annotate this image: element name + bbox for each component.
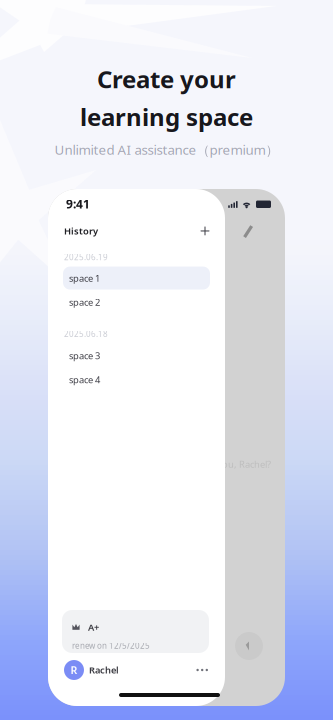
- staticText: space 1: [69, 272, 100, 284]
- button[interactable]: New space: [195, 221, 215, 241]
- staticText: A+: [88, 621, 99, 633]
- staticText: History: [64, 225, 98, 237]
- button[interactable]: space 3: [63, 344, 210, 367]
- staticText: space 3: [69, 349, 100, 362]
- staticText: space 2: [69, 296, 100, 308]
- staticText: 2025.06.19: [64, 252, 108, 262]
- staticText: R: [70, 663, 77, 677]
- staticText: 9:41: [66, 196, 90, 212]
- staticText: Create your: [97, 63, 236, 95]
- button[interactable]: space 2: [63, 291, 210, 314]
- button[interactable]: space 4: [63, 368, 210, 391]
- staticText: Unlimited AI assistance（premium）: [54, 141, 278, 158]
- staticText: learning space: [80, 101, 253, 133]
- staticText: space 4: [69, 373, 100, 386]
- staticText: renew on 12/5/2025: [72, 640, 150, 651]
- button[interactable]: space 1: [63, 267, 210, 290]
- staticText: Rachel: [89, 664, 119, 676]
- staticText: 2025.06.18: [64, 329, 108, 339]
- button[interactable]: A+: [62, 610, 209, 653]
- staticText: How can I help you, Rachel?: [153, 458, 271, 470]
- button[interactable]: R: [48, 654, 225, 686]
